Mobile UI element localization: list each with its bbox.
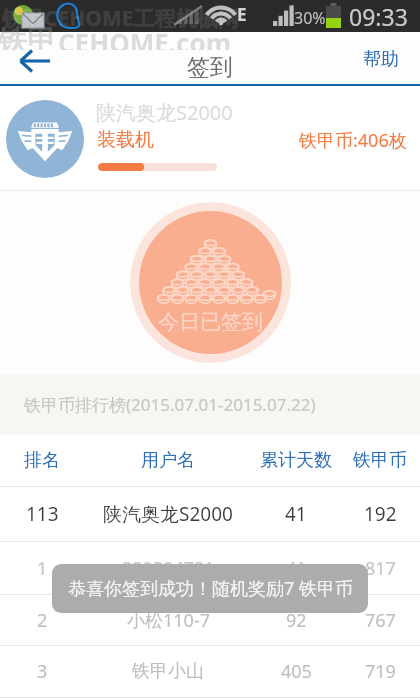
- staticText: 铁甲币:406枚: [299, 128, 407, 153]
- staticText: 今日已签到: [158, 309, 263, 335]
- staticText: 排名: [24, 449, 60, 472]
- button[interactable]: 2: [0, 595, 420, 645]
- staticText: 229304721: [122, 556, 215, 581]
- staticText: 767: [365, 608, 396, 633]
- staticText: 92: [286, 608, 307, 633]
- staticText: 113: [26, 501, 59, 527]
- staticText: 09:33: [349, 1, 408, 32]
- staticText: 30%: [294, 7, 326, 29]
- staticText: 817: [365, 556, 396, 581]
- button[interactable]: Back: [4, 32, 66, 84]
- staticText: CEHOME.com: [58, 25, 232, 50]
- staticText: 41: [286, 556, 307, 581]
- staticText: 41: [285, 501, 307, 527]
- staticText: 累计天数: [260, 449, 332, 472]
- staticText: 陕汽奥龙S2000: [96, 99, 233, 126]
- staticText: 719: [365, 659, 396, 684]
- staticText: 小松110-7: [127, 608, 210, 633]
- button[interactable]: 3: [0, 646, 420, 697]
- staticText: 铁甲小山: [132, 660, 204, 683]
- staticText: 用户名: [141, 449, 195, 472]
- button[interactable]: 帮助: [352, 40, 410, 78]
- staticText: 恭喜你签到成功！随机奖励7 铁甲币: [68, 576, 353, 601]
- button[interactable]: 已签到: [130, 202, 291, 363]
- staticText: 装载机: [97, 128, 154, 152]
- staticText: 2: [37, 608, 48, 633]
- staticText: 铁甲CEHOME工程机械网: [2, 4, 239, 33]
- button[interactable]: 113: [0, 487, 420, 541]
- staticText: 405: [281, 659, 312, 684]
- staticText: E: [237, 3, 247, 26]
- staticText: 陕汽奥龙S2000: [103, 501, 233, 527]
- staticText: 铁甲币排行榜(2015.07.01-2015.07.22): [24, 393, 316, 416]
- staticText: 铁甲: [0, 23, 56, 50]
- staticText: 3: [37, 659, 48, 684]
- staticText: 帮助: [363, 48, 399, 71]
- staticText: 签到: [187, 53, 233, 82]
- staticText: 铁甲币: [353, 449, 407, 472]
- button[interactable]: 1: [0, 542, 420, 594]
- staticText: 1: [37, 556, 48, 581]
- staticText: 192: [364, 501, 397, 527]
